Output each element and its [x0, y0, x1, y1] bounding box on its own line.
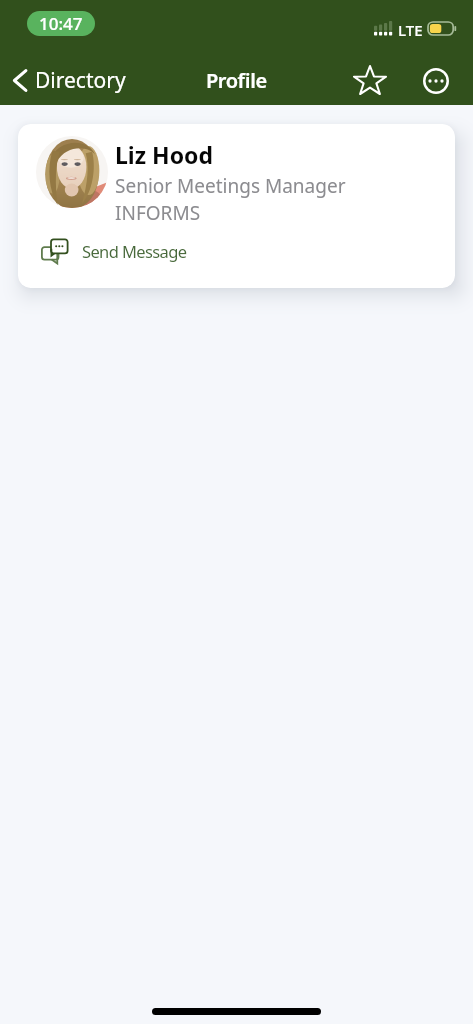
button[interactable]: Send Message: [18, 230, 455, 272]
staticText: Send Message: [82, 240, 187, 262]
staticText: LTE: [398, 20, 423, 40]
button[interactable]: Directory: [0, 66, 134, 95]
button[interactable]: Clock 10:47: [27, 11, 95, 36]
button[interactable]: Liz Hood: [18, 124, 455, 288]
staticText: Directory: [35, 66, 126, 95]
staticText: Profile: [206, 67, 267, 94]
button[interactable]: More options: [413, 58, 459, 102]
staticText: INFORMS: [115, 200, 201, 226]
button[interactable]: Favorite: [347, 58, 393, 102]
staticText: Senior Meetings Manager: [115, 173, 346, 199]
staticText: Liz Hood: [115, 139, 213, 170]
staticText: 10:47: [39, 12, 83, 35]
